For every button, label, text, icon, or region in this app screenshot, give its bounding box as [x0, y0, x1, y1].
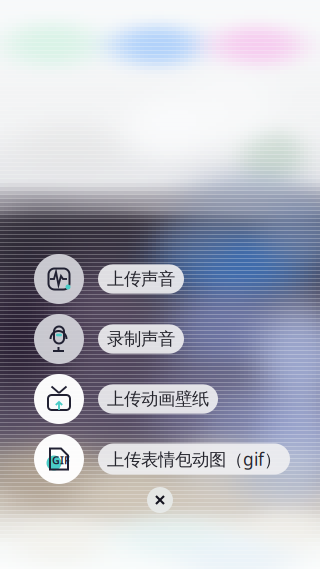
button[interactable]: 录制声音 [0, 314, 320, 364]
button[interactable]: 上传动画壁纸 [0, 374, 320, 424]
button[interactable]: Close [142, 482, 178, 518]
staticText: 上传动画壁纸 [107, 388, 209, 410]
staticText: 上传表情包动图（gif） [107, 447, 281, 470]
button[interactable]: 上传声音 [0, 254, 320, 304]
staticText: GIF [52, 453, 70, 467]
button[interactable]: GIF [0, 434, 320, 484]
staticText: 录制声音 [107, 328, 175, 350]
staticText: 上传声音 [107, 268, 175, 290]
